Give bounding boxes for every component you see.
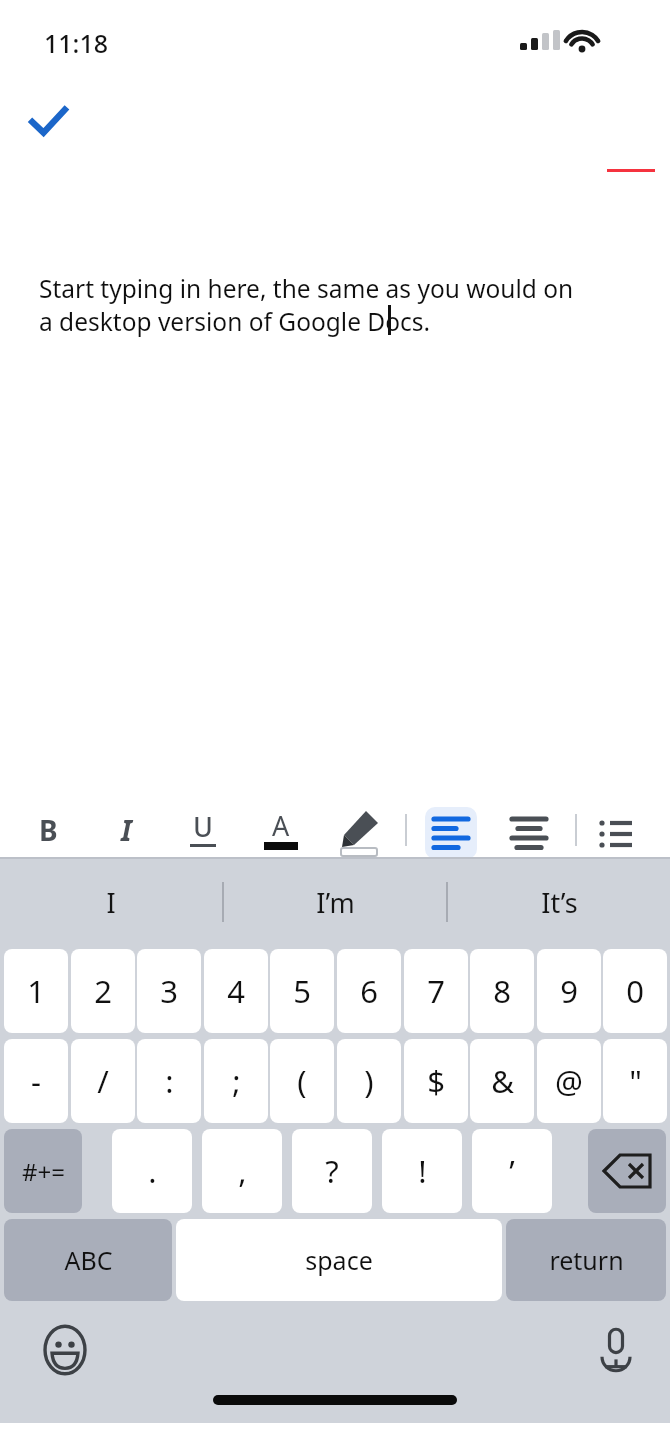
button[interactable]: .: [112, 1129, 192, 1213]
button[interactable]: Done: [20, 94, 76, 150]
button[interactable]: ;: [204, 1039, 268, 1123]
button[interactable]: 2: [71, 949, 135, 1033]
staticText: !: [418, 1150, 427, 1192]
button[interactable]: Backspace: [588, 1129, 666, 1213]
staticText: 4: [227, 970, 245, 1012]
button[interactable]: Bold: [22, 804, 74, 856]
button[interactable]: 8: [470, 949, 534, 1033]
staticText: 7: [427, 970, 445, 1012]
staticText: ABC: [64, 1243, 113, 1277]
staticText: ": [629, 1060, 642, 1102]
staticText: space: [305, 1243, 373, 1277]
button[interactable]: ": [603, 1039, 667, 1123]
staticText: (: [297, 1060, 307, 1102]
button[interactable]: 0: [603, 949, 667, 1033]
staticText: U: [193, 808, 213, 845]
staticText: .: [148, 1150, 157, 1192]
button[interactable]: /: [71, 1039, 135, 1123]
staticText: -: [31, 1060, 41, 1102]
button[interactable]: -: [4, 1039, 68, 1123]
button[interactable]: It’s: [448, 871, 670, 933]
staticText: A: [272, 807, 290, 844]
staticText: @: [555, 1060, 583, 1102]
staticText: /: [97, 1060, 109, 1102]
staticText: ;: [232, 1060, 241, 1102]
staticText: 11:18: [44, 26, 109, 60]
staticText: return: [549, 1243, 624, 1277]
button[interactable]: ’: [472, 1129, 552, 1213]
staticText: ?: [325, 1150, 339, 1192]
button[interactable]: @: [537, 1039, 601, 1123]
button[interactable]: :: [137, 1039, 201, 1123]
staticText: ): [364, 1060, 374, 1102]
button[interactable]: 4: [204, 949, 268, 1033]
button[interactable]: 1: [4, 949, 68, 1033]
button[interactable]: Symbols: [4, 1129, 82, 1213]
button[interactable]: ,: [202, 1129, 282, 1213]
staticText: ,: [238, 1150, 247, 1192]
button[interactable]: space: [176, 1219, 502, 1301]
staticText: $: [427, 1060, 445, 1102]
staticText: ’: [509, 1150, 515, 1192]
button[interactable]: Highlight color: [332, 803, 386, 857]
button[interactable]: 6: [337, 949, 401, 1033]
staticText: 1: [27, 970, 45, 1012]
button[interactable]: Bulleted list: [592, 807, 644, 859]
staticText: I: [106, 884, 116, 921]
staticText: #+=: [22, 1155, 65, 1188]
button[interactable]: return: [506, 1219, 666, 1301]
button[interactable]: Align center: [503, 807, 555, 859]
staticText: &: [491, 1060, 514, 1102]
button[interactable]: 5: [270, 949, 334, 1033]
button[interactable]: $: [404, 1039, 468, 1123]
staticText: I’m: [316, 884, 355, 921]
staticText: 6: [360, 970, 378, 1012]
button[interactable]: Underline: [177, 804, 229, 856]
button[interactable]: 7: [404, 949, 468, 1033]
button[interactable]: Text color: [255, 804, 307, 856]
button[interactable]: 9: [537, 949, 601, 1033]
button[interactable]: I’m: [224, 871, 446, 933]
button[interactable]: (: [270, 1039, 334, 1123]
staticText: It’s: [541, 884, 578, 921]
staticText: 0: [626, 970, 644, 1012]
button[interactable]: 3: [137, 949, 201, 1033]
staticText: 3: [160, 970, 178, 1012]
button[interactable]: I: [0, 871, 222, 933]
staticText: :: [165, 1060, 174, 1102]
button[interactable]: !: [382, 1129, 462, 1213]
button[interactable]: Emoji: [38, 1323, 92, 1377]
button[interactable]: ABC: [4, 1219, 172, 1301]
staticText: 9: [560, 970, 578, 1012]
staticText: 2: [94, 970, 112, 1012]
staticText: Start typing in here, the same as you wo…: [39, 272, 574, 338]
button[interactable]: ?: [292, 1129, 372, 1213]
staticText: 5: [293, 970, 311, 1012]
button[interactable]: Italic: [100, 804, 152, 856]
staticText: B: [39, 811, 58, 849]
button[interactable]: Voice input: [590, 1323, 642, 1375]
button[interactable]: Align left: [425, 807, 477, 859]
staticText: 8: [493, 970, 511, 1012]
button[interactable]: &: [470, 1039, 534, 1123]
button[interactable]: ): [337, 1039, 401, 1123]
staticText: I: [121, 811, 132, 849]
